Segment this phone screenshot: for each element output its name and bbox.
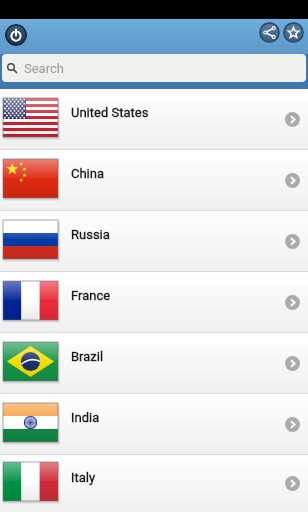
button[interactable]: Open: [285, 234, 300, 249]
button[interactable]: France: [0, 272, 308, 332]
button[interactable]: Open: [285, 356, 300, 371]
staticText: United States: [71, 105, 149, 120]
button[interactable]: Brazil: [0, 333, 308, 393]
staticText: Italy: [71, 470, 96, 485]
button[interactable]: Search: [2, 54, 306, 82]
button[interactable]: United States: [0, 89, 308, 149]
button[interactable]: Favorite: [283, 22, 304, 43]
button[interactable]: Italy: [0, 455, 308, 512]
staticText: Search: [24, 61, 64, 76]
staticText: India: [71, 410, 100, 425]
button[interactable]: Open: [285, 173, 300, 188]
button[interactable]: Open: [285, 417, 300, 432]
button[interactable]: China: [0, 150, 308, 210]
staticText: Brazil: [71, 349, 104, 364]
button[interactable]: Share: [259, 22, 280, 43]
staticText: Russia: [71, 227, 110, 242]
button[interactable]: Power: [5, 24, 27, 46]
button[interactable]: Open: [285, 112, 300, 127]
button[interactable]: Open: [285, 476, 300, 491]
staticText: China: [71, 166, 105, 181]
button[interactable]: Open: [285, 295, 300, 310]
button[interactable]: Russia: [0, 211, 308, 271]
button[interactable]: India: [0, 394, 308, 454]
staticText: France: [71, 288, 111, 303]
